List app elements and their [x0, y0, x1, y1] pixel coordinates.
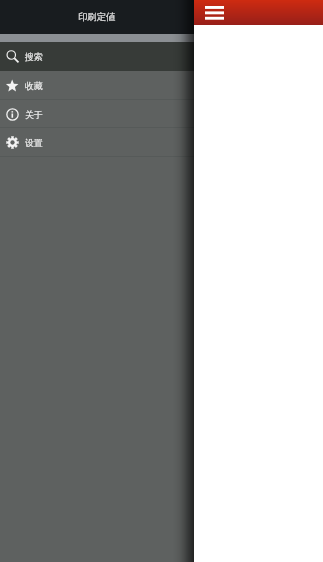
staticText: 设置: [25, 137, 43, 148]
button[interactable]: 收藏: [0, 71, 194, 100]
staticText: 印刷定値: [78, 11, 116, 23]
staticText: 关于: [25, 109, 43, 120]
staticText: 收藏: [25, 80, 43, 91]
button[interactable]: 搜索: [0, 42, 194, 71]
button[interactable]: 设置: [0, 128, 194, 157]
staticText: 搜索: [25, 51, 43, 62]
button[interactable]: Open navigation drawer: [199, 0, 229, 25]
button[interactable]: 关于: [0, 100, 194, 128]
